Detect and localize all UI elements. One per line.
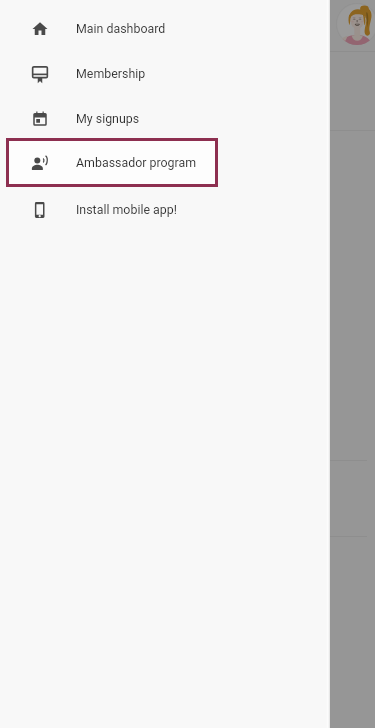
button[interactable]: Install mobile app!	[0, 187, 330, 232]
staticText: Membership	[76, 66, 146, 81]
button[interactable]: Profile photo	[336, 3, 375, 45]
button[interactable]: Ambassador program	[0, 138, 330, 187]
staticText: My signups	[76, 111, 140, 126]
button[interactable]: Main dashboard	[0, 6, 330, 51]
button[interactable]: Membership	[0, 51, 330, 96]
button[interactable]: My signups	[0, 96, 330, 141]
staticText: Install mobile app!	[76, 202, 177, 217]
staticText: Ambassador program	[76, 155, 197, 170]
staticText: Main dashboard	[76, 21, 166, 36]
